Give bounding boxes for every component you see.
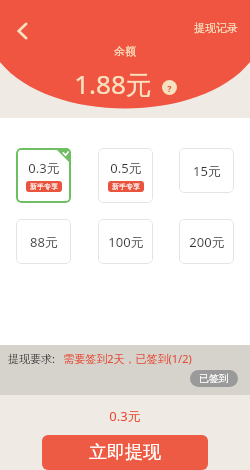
staticText: 15元 xyxy=(193,162,221,180)
button[interactable]: 200元 xyxy=(179,219,234,264)
button[interactable]: Help xyxy=(162,80,177,95)
button[interactable]: 提现记录 xyxy=(190,18,242,38)
staticText: 新手专享 xyxy=(30,182,58,191)
staticText: 立即提现 xyxy=(89,441,161,464)
staticText: 0.3元 xyxy=(109,407,141,425)
button[interactable]: 0.5元 xyxy=(98,148,153,203)
staticText: 余额 xyxy=(114,44,136,58)
staticText: 0.3元 xyxy=(28,159,60,177)
staticText: 提现要求: xyxy=(8,351,55,366)
staticText: 100元 xyxy=(108,233,144,251)
staticText: 0.5元 xyxy=(110,159,142,177)
staticText: 需要签到2天，已签到(1/2) xyxy=(63,351,192,366)
button[interactable]: 100元 xyxy=(98,219,153,264)
staticText: ? xyxy=(167,82,172,94)
button[interactable]: 立即提现 xyxy=(42,435,208,470)
button[interactable]: 15元 xyxy=(179,148,234,193)
staticText: 已签到 xyxy=(199,372,229,385)
staticText: 200元 xyxy=(189,233,225,251)
button[interactable]: 已签到 xyxy=(190,370,238,387)
button[interactable]: 88元 xyxy=(16,219,71,264)
staticText: 提现记录 xyxy=(194,21,238,35)
staticText: 1.88元 xyxy=(74,66,152,102)
staticText: 新手专享 xyxy=(112,182,140,191)
staticText: 88元 xyxy=(30,233,58,251)
button[interactable]: 0.3元 xyxy=(16,148,71,203)
button[interactable]: Back xyxy=(6,14,40,48)
